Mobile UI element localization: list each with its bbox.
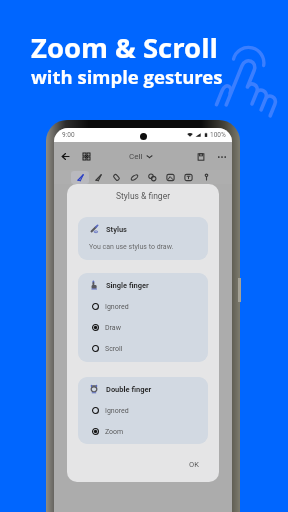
staticText: Draw (105, 324, 121, 332)
staticText: Cell (129, 152, 143, 161)
button[interactable]: Cell (129, 146, 152, 166)
staticText: Double finger (106, 385, 152, 394)
staticText: Zoom & Scroll (31, 29, 218, 66)
staticText: Single finger (106, 281, 149, 290)
button[interactable]: Pen (71, 171, 89, 184)
button[interactable]: Grid view (77, 147, 96, 166)
staticText: Stylus & finger (67, 191, 219, 201)
button[interactable]: Laser pointer (197, 171, 215, 184)
button[interactable]: Pencil (89, 171, 107, 184)
button[interactable]: Insert image (161, 171, 179, 184)
button[interactable]: OK (181, 456, 206, 473)
staticText: Ignored (105, 303, 129, 311)
button[interactable]: Shapes (143, 171, 161, 184)
staticText: Zoom (105, 428, 124, 436)
button[interactable]: Ignored (78, 296, 208, 317)
button[interactable]: Draw (78, 317, 208, 338)
button[interactable]: Zoom (78, 421, 208, 442)
button[interactable]: Back (56, 147, 75, 166)
button[interactable]: More options (212, 147, 231, 166)
button[interactable]: Highlighter (107, 171, 125, 184)
button[interactable]: Ignored (78, 400, 208, 421)
staticText: You can use stylus to draw. (89, 243, 174, 251)
button[interactable]: Eraser (125, 171, 143, 184)
staticText: Scroll (105, 345, 123, 353)
button[interactable]: Text box (179, 171, 197, 184)
staticText: Ignored (105, 407, 129, 415)
button[interactable]: Stylus (78, 217, 208, 260)
staticText: Stylus (106, 225, 127, 234)
button[interactable]: Save (191, 147, 210, 166)
staticText: 9:00 (62, 131, 75, 139)
staticText: 100% (210, 131, 226, 139)
staticText: OK (189, 460, 199, 469)
staticText: with simple gestures (31, 64, 223, 89)
button[interactable]: Scroll (78, 338, 208, 359)
